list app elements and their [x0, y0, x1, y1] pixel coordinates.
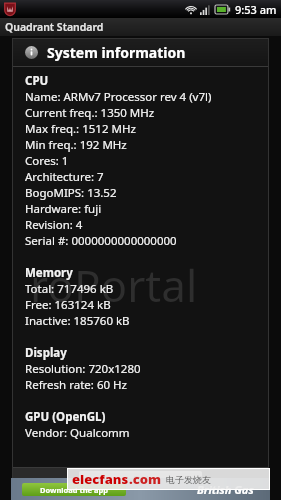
staticText: 9:53 am — [235, 2, 277, 17]
staticText: Total: 717496 kB — [25, 281, 114, 297]
staticText: .com — [129, 470, 162, 488]
staticText: Display — [25, 345, 67, 361]
staticText: Resolution: 720x1280 — [25, 361, 141, 377]
staticText: Memory — [25, 265, 73, 281]
staticText: Inactive: 185760 kB — [25, 313, 130, 329]
staticText: 电子发烧友 — [166, 474, 211, 485]
staticText: Architecture: 7 — [25, 169, 104, 185]
staticText: Cores: 1 — [25, 153, 69, 169]
staticText: Name: ARMv7 Processor rev 4 (v7l) — [25, 89, 212, 105]
button[interactable]: OK — [79, 471, 202, 489]
staticText: Min freq.: 192 MHz — [25, 137, 127, 153]
staticText: Hardware: fuji — [25, 201, 102, 217]
staticText: System information — [47, 43, 186, 62]
staticText: Quadrant Standard — [5, 20, 104, 34]
staticText: Max freq.: 1512 MHz — [25, 121, 136, 137]
button[interactable]: Download the app — [11, 478, 270, 500]
staticText: OK — [132, 472, 149, 488]
staticText: Revision: 4 — [25, 217, 83, 233]
staticText: Refresh rate: 60 Hz — [25, 377, 127, 393]
staticText: GPU (OpenGL) — [25, 409, 106, 425]
staticText: British Gas — [197, 482, 254, 497]
staticText: Current freq.: 1350 MHz — [25, 105, 155, 121]
staticText: elecfans — [72, 470, 129, 488]
staticText: roPortal — [30, 255, 198, 315]
staticText: Vendor: Qualcomm — [25, 425, 130, 441]
staticText: BogoMIPS: 13.52 — [25, 185, 117, 201]
staticText: CPU — [25, 73, 49, 89]
staticText: Serial #: 0000000000000000 — [25, 233, 177, 249]
staticText: Free: 163124 kB — [25, 297, 111, 313]
staticText: Download the app — [40, 485, 108, 495]
